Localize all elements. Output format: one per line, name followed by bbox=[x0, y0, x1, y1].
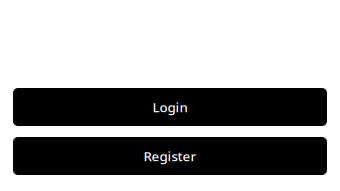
staticText: Login bbox=[152, 98, 187, 116]
button[interactable]: Register bbox=[13, 137, 327, 175]
button[interactable]: Login bbox=[13, 88, 327, 126]
staticText: Register bbox=[143, 147, 196, 165]
